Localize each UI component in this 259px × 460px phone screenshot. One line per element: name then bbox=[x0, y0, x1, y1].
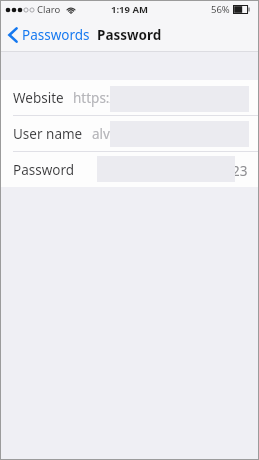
staticText: Website bbox=[13, 89, 64, 107]
button[interactable]: Back to Passwords bbox=[0, 26, 90, 44]
staticText: Password bbox=[13, 161, 75, 179]
staticText: 56% bbox=[211, 3, 230, 16]
staticText: https://www.drop bbox=[73, 89, 185, 107]
button[interactable]: User name bbox=[0, 116, 259, 151]
button[interactable]: Website bbox=[0, 80, 259, 115]
staticText: Claro bbox=[37, 3, 61, 16]
staticText: alvaro.manrique bbox=[92, 125, 197, 143]
button[interactable]: Password bbox=[0, 152, 259, 187]
staticText: Passwords bbox=[22, 26, 90, 44]
staticText: 23 bbox=[232, 162, 248, 180]
staticText: 1:19 AM bbox=[111, 3, 148, 16]
staticText: User name bbox=[13, 125, 83, 143]
staticText: Password bbox=[97, 26, 162, 44]
